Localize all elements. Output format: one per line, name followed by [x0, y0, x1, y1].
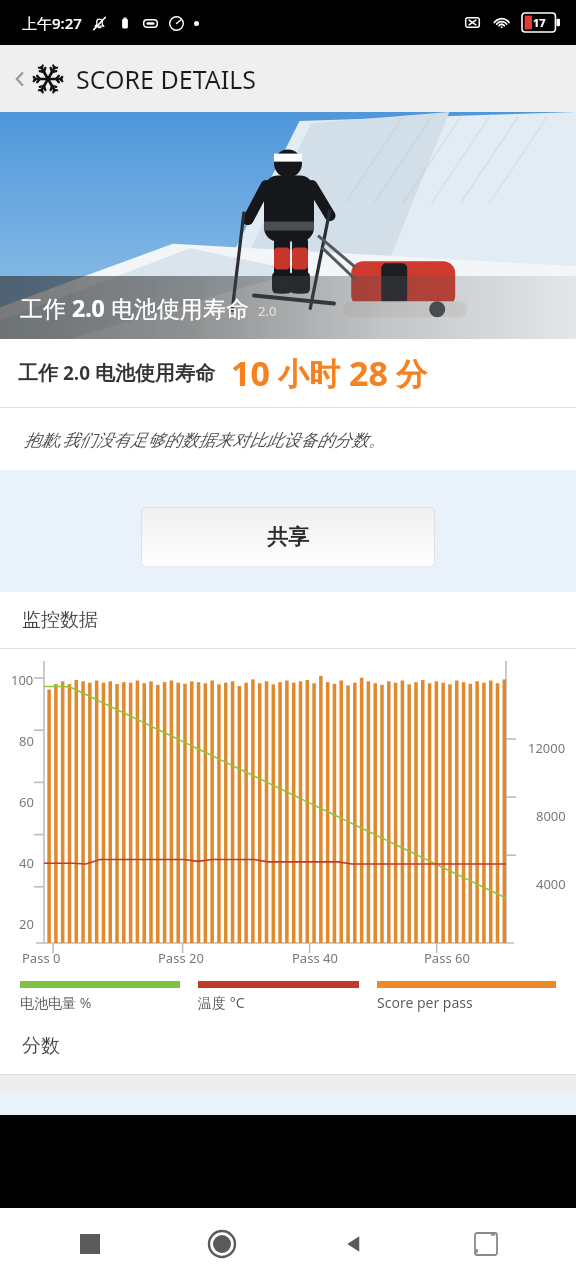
staticText: 电池电量 %: [20, 993, 92, 1012]
staticText: Pass 20: [158, 949, 204, 967]
staticText: 100: [11, 671, 34, 689]
staticText: 20: [19, 915, 34, 933]
staticText: 17: [533, 15, 546, 30]
staticText: 温度 °C: [198, 993, 245, 1012]
button[interactable]: Back: [288, 1208, 420, 1280]
staticText: 小时: [270, 352, 349, 394]
staticText: 工作: [18, 361, 58, 386]
staticText: 4000: [536, 875, 566, 893]
staticText: Score per pass: [377, 993, 473, 1012]
staticText: SCORE DETAILS: [76, 62, 257, 96]
staticText: 电池使用寿命: [105, 292, 249, 323]
staticText: 上午9:27: [22, 13, 82, 33]
staticText: 2.0: [72, 292, 105, 323]
staticText: 12000: [528, 739, 566, 757]
staticText: 80: [19, 732, 34, 750]
staticText: Pass 60: [424, 949, 470, 967]
staticText: 电池使用寿命: [95, 361, 215, 386]
staticText: 40: [19, 854, 34, 872]
staticText: 共享: [267, 524, 309, 550]
button[interactable]: Recents: [24, 1208, 156, 1280]
staticText: 分数: [22, 1034, 60, 1058]
staticText: Pass 40: [292, 949, 338, 967]
other: Back: [10, 69, 30, 89]
button[interactable]: Back: [0, 45, 576, 112]
button[interactable]: 共享: [141, 507, 435, 567]
button[interactable]: Split screen: [420, 1208, 552, 1280]
staticText: Pass 0: [22, 949, 61, 967]
staticText: 抱歉,我们没有足够的数据来对比此设备的分数。: [24, 428, 386, 451]
staticText: 10: [231, 350, 270, 396]
staticText: 28: [349, 350, 388, 396]
staticText: 监控数据: [22, 608, 98, 632]
staticText: 2.0: [258, 302, 277, 320]
staticText: 2.0: [58, 360, 95, 386]
button[interactable]: Home: [156, 1208, 288, 1280]
staticText: 工作: [20, 292, 72, 323]
staticText: 分: [388, 352, 428, 394]
staticText: 8000: [536, 807, 566, 825]
staticText: 60: [19, 793, 34, 811]
